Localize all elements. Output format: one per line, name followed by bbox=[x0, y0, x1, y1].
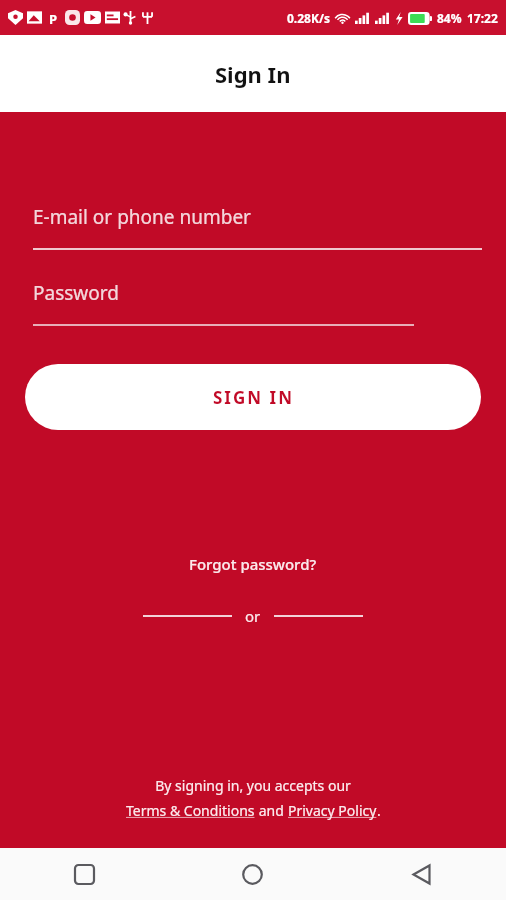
button[interactable]: E-mail or phone number bbox=[0, 204, 506, 250]
staticText: and bbox=[255, 801, 288, 820]
button[interactable]: SIGN IN bbox=[25, 364, 481, 430]
button[interactable]: Forgot password? bbox=[177, 550, 329, 578]
staticText: Terms & Conditions bbox=[126, 801, 255, 820]
button[interactable]: Terms & Conditions bbox=[126, 801, 255, 820]
button[interactable]: Password bbox=[0, 280, 506, 326]
button[interactable]: Privacy Policy bbox=[288, 801, 377, 820]
staticText: By signing in, you accepts our bbox=[155, 776, 351, 795]
staticText: 84% bbox=[437, 10, 462, 26]
staticText: SIGN IN bbox=[213, 386, 294, 409]
staticText: P bbox=[49, 10, 58, 25]
button[interactable]: Home bbox=[168, 848, 337, 900]
staticText: 17:22 bbox=[467, 10, 498, 26]
staticText: Sign In bbox=[215, 59, 291, 89]
staticText: 0.28K/s bbox=[287, 10, 330, 26]
button[interactable]: Back bbox=[337, 848, 506, 900]
staticText: . bbox=[377, 801, 381, 820]
staticText: E-mail or phone number bbox=[33, 204, 251, 230]
staticText: Forgot password? bbox=[189, 554, 317, 574]
staticText: Privacy Policy bbox=[288, 801, 377, 820]
button[interactable]: Recent apps bbox=[0, 848, 168, 900]
staticText: Password bbox=[33, 280, 119, 306]
staticText: or bbox=[245, 606, 261, 626]
